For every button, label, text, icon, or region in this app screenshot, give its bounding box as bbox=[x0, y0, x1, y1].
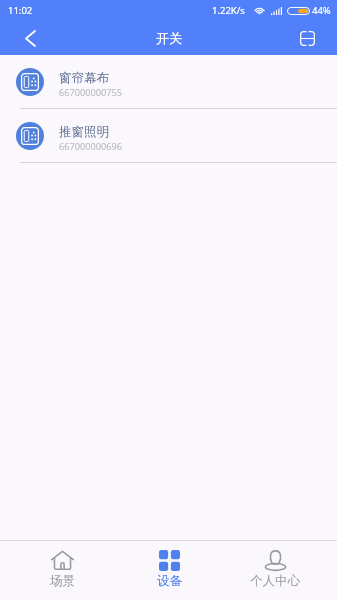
staticText: 667000000696 bbox=[59, 140, 123, 153]
button[interactable]: 场景 bbox=[9, 541, 116, 596]
button[interactable]: Back bbox=[19, 27, 41, 49]
staticText: 场景 bbox=[50, 573, 75, 589]
staticText: 个人中心 bbox=[250, 573, 300, 589]
staticText: 11:02 bbox=[8, 4, 33, 17]
staticText: 窗帘幕布 bbox=[59, 70, 109, 86]
staticText: 1.22K/s bbox=[212, 4, 245, 17]
staticText: 推窗照明 bbox=[59, 124, 109, 140]
button[interactable]: 个人中心 bbox=[222, 541, 328, 596]
button[interactable]: 推窗照明 bbox=[0, 109, 337, 163]
staticText: 667000000755 bbox=[59, 86, 123, 99]
staticText: 开关 bbox=[156, 30, 182, 46]
staticText: 设备 bbox=[157, 573, 182, 589]
button[interactable]: 窗帘幕布 bbox=[0, 55, 337, 109]
button[interactable]: 设备 bbox=[116, 541, 222, 596]
button[interactable]: Scan bbox=[296, 27, 318, 49]
staticText: 44% bbox=[312, 4, 331, 17]
